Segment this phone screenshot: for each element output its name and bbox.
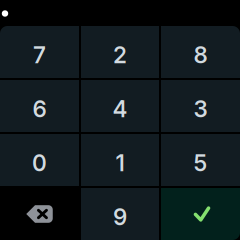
button[interactable]: 4 (81, 80, 159, 132)
button[interactable]: 6 (0, 80, 79, 132)
staticText: 4 (112, 95, 127, 123)
button[interactable]: 5 (161, 134, 240, 186)
staticText: 1 (115, 149, 124, 177)
staticText: 9 (113, 203, 127, 231)
button[interactable]: 0 (0, 134, 79, 186)
button[interactable]: 8 (161, 26, 240, 78)
staticText: 8 (193, 41, 207, 69)
button[interactable]: Delete (0, 188, 79, 240)
button[interactable]: 7 (0, 26, 79, 78)
button[interactable]: 9 (81, 188, 159, 240)
button[interactable]: 2 (81, 26, 159, 78)
button[interactable]: Confirm (161, 188, 240, 240)
button[interactable]: 3 (161, 80, 240, 132)
staticText: 7 (33, 41, 46, 69)
staticText: 6 (32, 95, 46, 123)
staticText: 2 (113, 41, 127, 69)
staticText: 5 (193, 149, 207, 177)
staticText: 0 (32, 149, 47, 177)
staticText: 3 (193, 95, 207, 123)
button[interactable]: 1 (81, 134, 159, 186)
